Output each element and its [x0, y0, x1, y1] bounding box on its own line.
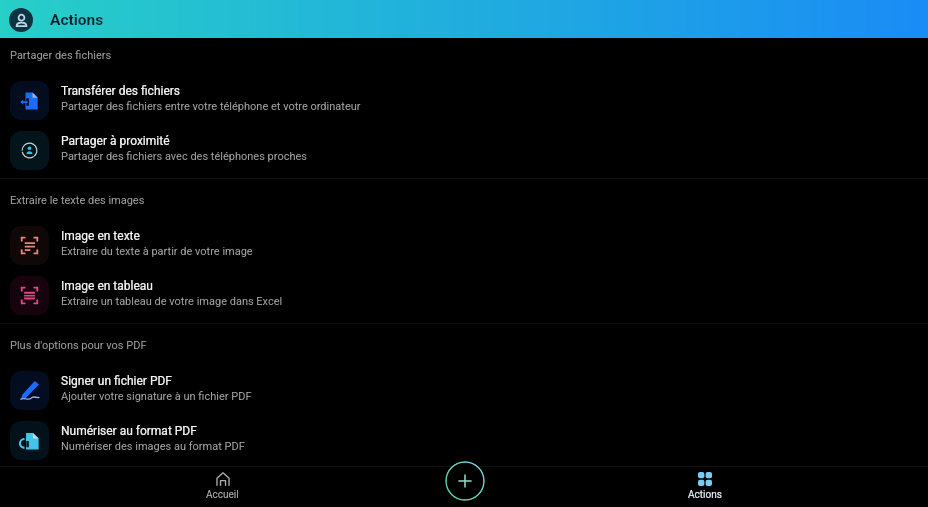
staticText: Partager des fichiers entre votre téléph… — [61, 100, 361, 113]
button[interactable]: Partager à proximité — [0, 131, 928, 181]
staticText: Partager des fichiers avec des téléphone… — [61, 150, 307, 163]
button[interactable]: Actions — [671, 466, 739, 507]
staticText: Partager des fichiers — [10, 49, 112, 62]
button[interactable]: Numériser au format PDF — [0, 421, 928, 466]
staticText: Numériser au format PDF — [61, 424, 197, 438]
button[interactable]: Compte — [9, 8, 33, 32]
button[interactable]: Transférer des fichiers — [0, 81, 928, 131]
button[interactable]: Image en tableau — [0, 276, 928, 326]
button[interactable]: Accueil — [188, 466, 256, 507]
staticText: Signer un fichier PDF — [61, 374, 172, 388]
staticText: Accueil — [206, 489, 239, 501]
button[interactable]: Image en texte — [0, 226, 928, 276]
staticText: Numériser des images au format PDF — [61, 440, 245, 453]
staticText: Partager à proximité — [61, 134, 170, 148]
button[interactable]: Signer un fichier PDF — [0, 371, 928, 421]
staticText: Image en tableau — [61, 279, 153, 293]
staticText: Extraire un tableau de votre image dans … — [61, 295, 283, 308]
button[interactable]: Ajouter — [445, 461, 485, 501]
staticText: Actions — [688, 489, 722, 501]
staticText: Image en texte — [61, 229, 140, 243]
staticText: Actions — [50, 11, 104, 29]
staticText: Extraire le texte des images — [10, 194, 145, 207]
staticText: Ajouter votre signature à un fichier PDF — [61, 390, 252, 403]
staticText: Transférer des fichiers — [61, 84, 181, 98]
staticText: Extraire du texte à partir de votre imag… — [61, 245, 253, 258]
staticText: Plus d'options pour vos PDF — [10, 339, 147, 352]
